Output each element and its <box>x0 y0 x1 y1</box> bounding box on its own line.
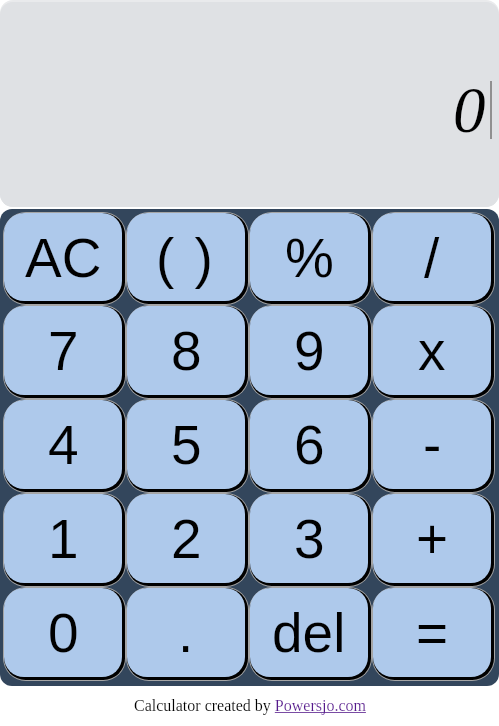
button[interactable]: + <box>372 493 495 587</box>
button[interactable]: del <box>249 587 372 681</box>
staticText: AC <box>25 227 102 288</box>
staticText: 0 <box>453 74 486 146</box>
staticText: 0 <box>48 602 79 663</box>
staticText: 6 <box>294 414 325 475</box>
button[interactable]: % <box>249 212 372 305</box>
button[interactable]: 3 <box>249 493 372 587</box>
button[interactable]: 6 <box>249 399 372 493</box>
staticText: ( ) <box>156 227 216 288</box>
button[interactable]: - <box>372 399 495 493</box>
staticText: 8 <box>171 320 202 381</box>
button[interactable]: 5 <box>126 399 249 493</box>
button[interactable]: ( ) <box>126 212 249 305</box>
staticText: / <box>424 227 440 288</box>
button[interactable]: 2 <box>126 493 249 587</box>
staticText: 3 <box>294 508 325 569</box>
button[interactable]: Calculator created by Powersjo.com <box>134 697 366 715</box>
staticText: del <box>272 602 346 663</box>
staticText: % <box>285 227 334 288</box>
staticText: + <box>416 508 449 569</box>
staticText: 9 <box>294 320 325 381</box>
button[interactable]: 0 <box>3 587 126 681</box>
staticText: - <box>423 414 442 475</box>
staticText: 7 <box>48 320 79 381</box>
button[interactable]: . <box>126 587 249 681</box>
staticText: . <box>178 602 194 663</box>
button[interactable]: = <box>372 587 495 681</box>
button[interactable]: 0 <box>0 2 499 207</box>
button[interactable]: 8 <box>126 305 249 399</box>
staticText: 4 <box>48 414 79 475</box>
staticText: 2 <box>171 508 202 569</box>
button[interactable]: 9 <box>249 305 372 399</box>
staticText: = <box>416 602 449 663</box>
button[interactable]: 7 <box>3 305 126 399</box>
staticText: x <box>418 320 446 381</box>
button[interactable]: 4 <box>3 399 126 493</box>
button[interactable]: x <box>372 305 495 399</box>
staticText: 1 <box>48 508 79 569</box>
button[interactable]: AC <box>3 212 126 305</box>
button[interactable]: 1 <box>3 493 126 587</box>
button[interactable]: / <box>372 212 495 305</box>
staticText: 5 <box>171 414 202 475</box>
